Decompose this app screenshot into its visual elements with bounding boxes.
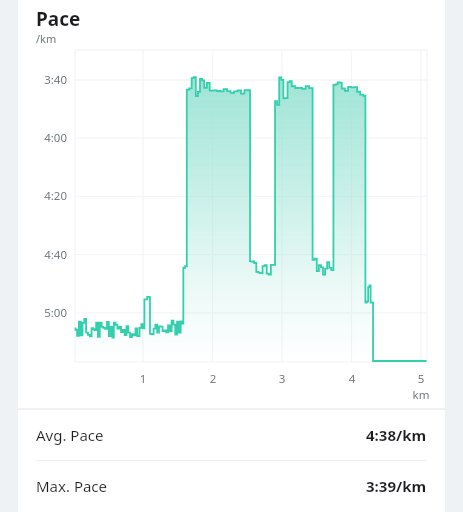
staticText: 4:20: [33, 188, 67, 204]
staticText: 4:00: [33, 130, 67, 146]
staticText: 4:38/km: [366, 425, 427, 445]
staticText: 5: [409, 371, 433, 387]
staticText: 3: [270, 371, 294, 387]
button[interactable]: Avg. Pace: [18, 410, 445, 460]
staticText: km: [407, 387, 435, 403]
button[interactable]: Max. Pace: [18, 461, 445, 511]
other: Pace over distance chart: [0, 0, 463, 512]
staticText: 3:40: [33, 72, 67, 88]
staticText: 1: [131, 371, 155, 387]
staticText: Avg. Pace: [36, 425, 104, 445]
staticText: 2: [201, 371, 225, 387]
staticText: /km: [36, 31, 57, 46]
staticText: 3:39/km: [366, 476, 427, 496]
staticText: Pace: [36, 6, 81, 32]
staticText: Max. Pace: [36, 476, 108, 496]
staticText: 4:40: [33, 247, 67, 263]
staticText: 4: [340, 371, 364, 387]
staticText: 5:00: [33, 305, 67, 321]
